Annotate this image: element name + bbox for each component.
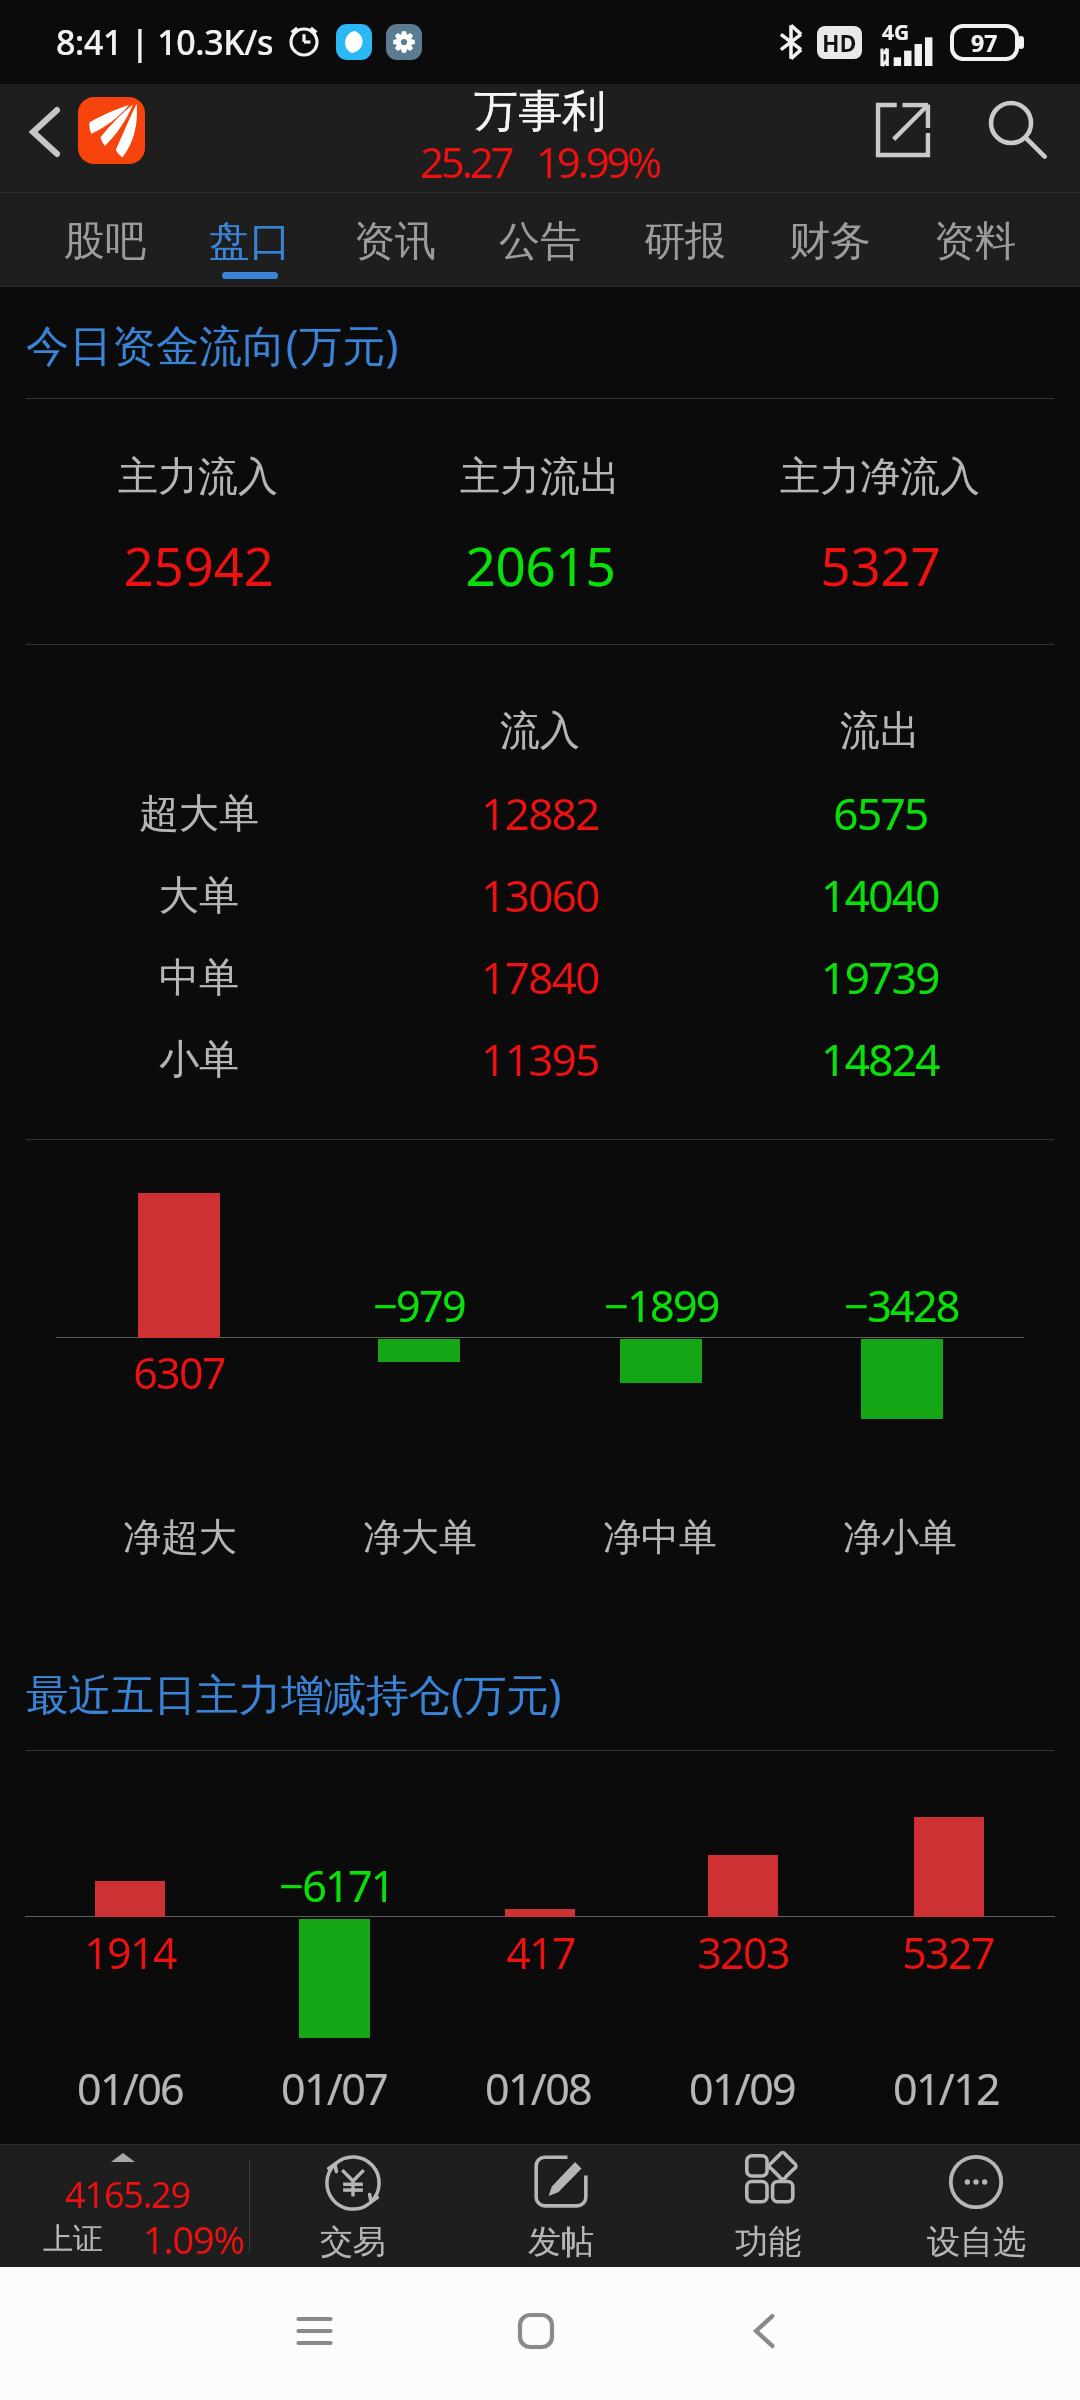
staticText: 4G <box>882 18 910 47</box>
staticText: 19739 <box>821 947 939 1007</box>
staticText: 13060 <box>481 865 599 925</box>
staticText: 大单 <box>159 870 239 920</box>
staticText: 今日资金流向(万元) <box>26 315 399 374</box>
button[interactable]: Back <box>9 97 79 167</box>
button[interactable]: 研报 <box>613 192 757 287</box>
staticText: 研报 <box>644 216 726 268</box>
staticText: 1.09% <box>143 2213 244 2265</box>
staticText: 5327 <box>820 529 941 601</box>
staticText: 19.99% <box>536 133 660 190</box>
staticText: 12882 <box>481 783 599 843</box>
staticText: 5327 <box>902 1923 994 1982</box>
button[interactable]: 功能 <box>664 2144 872 2267</box>
staticText: −3428 <box>844 1276 959 1335</box>
staticText: 净大单 <box>363 1513 477 1561</box>
staticText: 14824 <box>821 1029 939 1089</box>
staticText: 净小单 <box>843 1513 957 1561</box>
staticText: 中单 <box>159 952 239 1002</box>
staticText: 01/06 <box>77 2059 183 2118</box>
staticText: 万事利 <box>474 84 606 139</box>
staticText: 6575 <box>833 783 928 843</box>
staticText: 25.27 <box>420 133 512 190</box>
staticText: 上证 <box>43 2220 103 2258</box>
staticText: 4165.29 <box>65 2170 190 2219</box>
staticText: 25942 <box>123 529 274 601</box>
staticText: 主力流入 <box>118 451 278 501</box>
staticText: 14040 <box>821 865 939 925</box>
staticText: 01/12 <box>893 2059 999 2118</box>
staticText: 17840 <box>481 947 599 1007</box>
staticText: 超大单 <box>139 788 259 838</box>
button[interactable]: 发帖 <box>457 2144 665 2267</box>
staticText: 01/09 <box>689 2059 795 2118</box>
staticText: 净超大 <box>123 1513 237 1561</box>
staticText: 盘口 <box>209 216 291 268</box>
staticText: 设自选 <box>927 2221 1026 2263</box>
staticText: 3203 <box>697 1923 789 1982</box>
staticText: 发帖 <box>528 2221 594 2263</box>
button[interactable] <box>0 2144 249 2267</box>
staticText: 流入 <box>500 705 580 755</box>
button[interactable]: 盘口 <box>178 192 322 287</box>
button[interactable]: Recents <box>269 2286 359 2376</box>
staticText: HD <box>822 27 857 58</box>
staticText: 公告 <box>499 216 581 268</box>
button[interactable]: 设自选 <box>872 2144 1080 2267</box>
staticText: 股吧 <box>64 216 146 268</box>
staticText: 主力流出 <box>460 451 620 501</box>
button[interactable]: 交易 <box>249 2144 457 2267</box>
button[interactable]: Share <box>857 84 949 176</box>
button[interactable]: 财务 <box>758 192 902 287</box>
staticText: 财务 <box>789 216 871 268</box>
staticText: 6307 <box>133 1343 225 1402</box>
staticText: 1914 <box>84 1923 176 1982</box>
staticText: 20615 <box>465 529 616 601</box>
staticText: 11395 <box>481 1029 599 1089</box>
staticText: 小单 <box>159 1034 239 1084</box>
staticText: −979 <box>373 1276 465 1335</box>
button[interactable]: 资料 <box>903 192 1047 287</box>
button[interactable]: 公告 <box>468 192 612 287</box>
staticText: −1899 <box>604 1276 719 1335</box>
button[interactable]: Home <box>491 2286 581 2376</box>
staticText: 净中单 <box>603 1513 717 1561</box>
button[interactable]: Search <box>972 84 1064 176</box>
staticText: 417 <box>506 1923 575 1982</box>
staticText: 资料 <box>934 216 1016 268</box>
staticText: 最近五日主力增减持仓(万元) <box>26 1664 561 1723</box>
button[interactable]: East Money <box>78 97 145 164</box>
staticText: −6171 <box>279 1856 394 1915</box>
staticText: 主力净流入 <box>780 451 980 501</box>
staticText: 流出 <box>840 705 920 755</box>
staticText: 8:41 | 10.3K/s <box>56 19 274 65</box>
staticText: 97 <box>971 27 998 58</box>
staticText: 资讯 <box>354 216 436 268</box>
staticText: 功能 <box>735 2221 801 2263</box>
staticText: 01/08 <box>485 2059 591 2118</box>
button[interactable]: 资讯 <box>323 192 467 287</box>
staticText: 01/07 <box>281 2059 387 2118</box>
button[interactable]: Back <box>719 2286 809 2376</box>
button[interactable]: 股吧 <box>33 192 177 287</box>
staticText: 交易 <box>320 2221 386 2263</box>
